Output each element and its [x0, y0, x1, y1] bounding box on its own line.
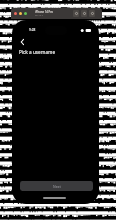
staticText: iPhone 14 Pro	[35, 10, 53, 14]
button[interactable]: More options	[89, 10, 95, 17]
button[interactable]: Back	[17, 37, 28, 47]
button[interactable]: Next	[20, 181, 93, 191]
button[interactable]: Rotate device	[73, 10, 79, 17]
staticText: Pick a username	[19, 49, 56, 55]
staticText: iOS 16.2	[35, 14, 44, 17]
staticText: 9:28	[29, 28, 36, 32]
button[interactable]: Screenshot	[81, 10, 87, 17]
staticText: Next	[53, 184, 61, 189]
